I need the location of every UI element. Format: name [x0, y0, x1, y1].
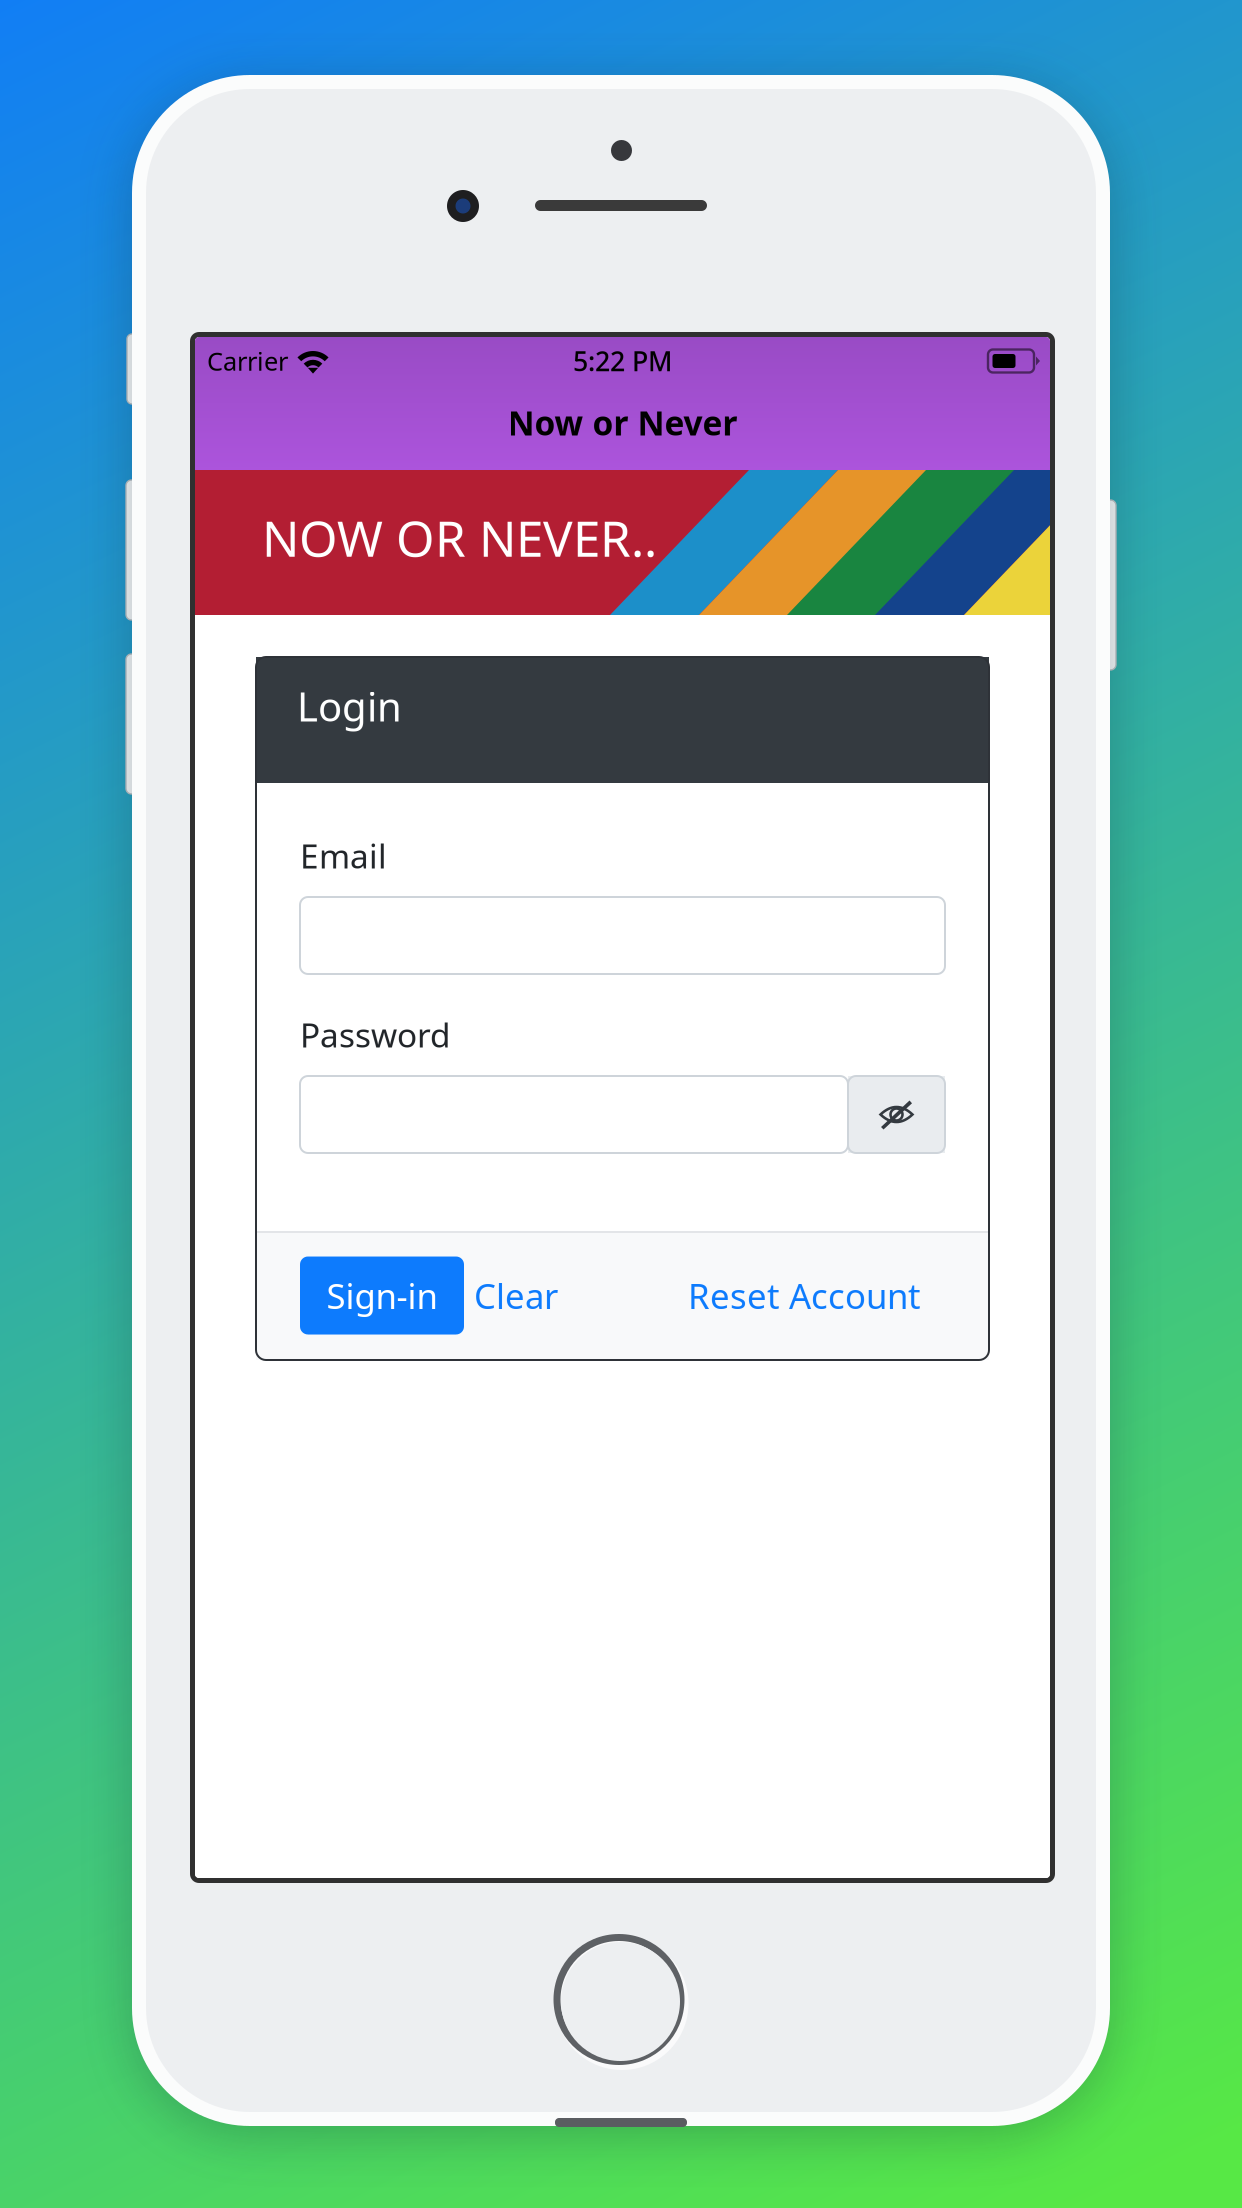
staticText: Sign-in	[326, 1272, 437, 1318]
staticText: Login	[297, 679, 402, 732]
button[interactable]: Reset Account	[688, 1256, 945, 1334]
staticText: Email	[300, 833, 387, 878]
button[interactable]: Clear	[464, 1256, 568, 1334]
staticText: Now or Never	[507, 400, 737, 445]
staticText: NOW OR NEVER..	[262, 505, 657, 570]
staticText: Reset Account	[688, 1272, 921, 1318]
staticText: Password	[300, 1012, 451, 1057]
staticText: Clear	[474, 1272, 558, 1318]
staticText: 5:22 PM	[573, 343, 672, 379]
button[interactable]: Sign-in	[300, 1256, 464, 1334]
button[interactable]: Show password	[848, 1076, 945, 1153]
staticText: Carrier	[207, 344, 288, 378]
